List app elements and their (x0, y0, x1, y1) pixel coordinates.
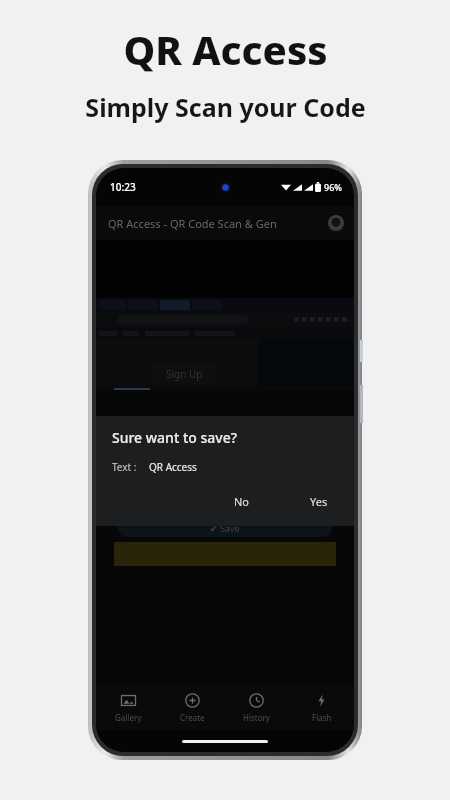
staticText: QR Access - QR Code Scan & Gen (108, 216, 277, 231)
button[interactable]: QR Access - QR Code Scan & Gen (96, 206, 354, 240)
staticText: Yes (310, 494, 328, 509)
button[interactable]: Create (160, 686, 224, 730)
staticText: History (243, 712, 270, 723)
button[interactable]: Flash (289, 686, 354, 730)
staticText: Text : (112, 460, 137, 474)
button[interactable]: No (222, 491, 262, 512)
staticText: Gallery (115, 712, 142, 723)
button[interactable]: Yes (298, 491, 340, 512)
button[interactable]: ✔ Save (118, 519, 332, 537)
staticText: Sign Up (166, 367, 203, 381)
button[interactable]: History (224, 686, 289, 730)
button[interactable]: Gallery (96, 686, 160, 730)
staticText: QR Access (123, 22, 328, 76)
staticText: 96% (324, 181, 342, 193)
staticText: Sure want to save? (112, 428, 237, 447)
staticText: QR Access (149, 460, 197, 474)
staticText: Flash (312, 712, 332, 723)
staticText: Create (180, 712, 205, 723)
staticText: Simply Scan your Code (85, 90, 366, 124)
staticText: 10:23 (110, 180, 136, 194)
staticText: No (234, 494, 250, 509)
staticText: ✔ Save (210, 522, 240, 534)
button[interactable]: Search (328, 215, 344, 231)
